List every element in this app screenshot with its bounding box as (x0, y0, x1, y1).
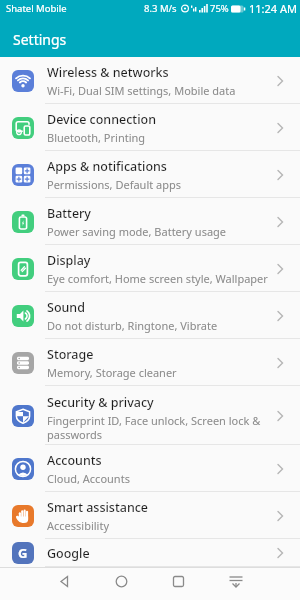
button[interactable]: Wireless & networks (0, 57, 300, 104)
staticText: G (18, 544, 28, 562)
staticText: Eye comfort, Home screen style, Wallpape… (47, 271, 268, 286)
button[interactable]: G (0, 539, 300, 567)
button[interactable]: Sound (0, 292, 300, 339)
staticText: Apps & notifications (47, 158, 167, 175)
staticText: Smart assistance (47, 499, 149, 516)
button[interactable]: Smart assistance (0, 492, 300, 539)
button[interactable] (150, 568, 207, 595)
staticText: 8.3 M/s (144, 2, 177, 15)
staticText: Cloud, Accounts (47, 471, 130, 486)
staticText: Google (47, 545, 90, 562)
staticText: Power saving mode, Battery usage (47, 224, 227, 239)
staticText: Memory, Storage cleaner (47, 365, 177, 380)
staticText: Wireless & networks (47, 64, 169, 81)
staticText: Accounts (47, 452, 102, 469)
staticText: Fingerprint ID, Face unlock, Screen lock… (47, 413, 277, 442)
staticText: 75% (210, 2, 229, 15)
staticText: Wi-Fi, Dual SIM settings, Mobile data (47, 83, 236, 98)
button[interactable]: Accounts (0, 445, 300, 492)
staticText: Display (47, 252, 91, 269)
button[interactable]: Device connection (0, 104, 300, 151)
button[interactable]: Security & privacy (0, 386, 300, 445)
staticText: Do not disturb, Ringtone, Vibrate (47, 318, 218, 333)
staticText: Bluetooth, Printing (47, 130, 146, 145)
button[interactable]: Apps & notifications (0, 151, 300, 198)
button[interactable] (207, 568, 264, 595)
button[interactable] (93, 568, 150, 595)
staticText: Sound (47, 299, 85, 316)
staticText: Permissions, Default apps (47, 177, 182, 192)
button[interactable]: Storage (0, 339, 300, 386)
button[interactable]: Display (0, 245, 300, 292)
button[interactable] (36, 568, 93, 595)
staticText: Storage (47, 346, 94, 363)
staticText: Settings (13, 30, 67, 49)
staticText: Accessibility (47, 518, 110, 533)
staticText: Security & privacy (47, 394, 154, 411)
staticText: Battery (47, 205, 91, 222)
button[interactable]: Battery (0, 198, 300, 245)
staticText: Shatel Mobile (6, 2, 67, 15)
staticText: Device connection (47, 111, 156, 128)
staticText: 11:24 AM (249, 1, 297, 16)
